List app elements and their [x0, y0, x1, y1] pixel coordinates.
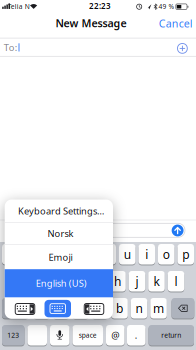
button[interactable]: m [150, 298, 167, 318]
staticText: 49 % [159, 2, 175, 11]
button[interactable]: return [148, 325, 194, 345]
button[interactable]: o [158, 244, 174, 264]
button[interactable]: 123 [2, 325, 24, 345]
button[interactable]: k [148, 271, 165, 291]
button[interactable]: Shift [2, 298, 29, 318]
button[interactable]: p [177, 244, 194, 264]
staticText: return [161, 331, 181, 340]
button[interactable]: x [53, 298, 69, 318]
button[interactable]: z [33, 298, 50, 318]
staticText: p [182, 246, 189, 262]
button[interactable]: Norsk [6, 222, 115, 244]
button[interactable]: English (US) [7, 269, 115, 297]
staticText: d [55, 273, 62, 289]
staticText: s [36, 273, 42, 289]
staticText: e [46, 246, 53, 262]
button[interactable]: Dictate [50, 325, 69, 345]
staticText: @ [111, 329, 119, 341]
button[interactable]: Keyboard Settings… [7, 200, 115, 222]
button[interactable]: Right one-handed keyboard [82, 302, 106, 316]
staticText: j [135, 273, 138, 289]
staticText: o [163, 246, 170, 262]
staticText: To: [4, 41, 18, 54]
button[interactable]: @ [106, 325, 124, 345]
staticText: Cancel [159, 16, 193, 30]
button[interactable]: Add Contact [177, 43, 187, 53]
button[interactable]: d [51, 271, 67, 291]
staticText: b [116, 300, 123, 316]
staticText: u [124, 246, 131, 262]
staticText: Telia N [8, 2, 30, 11]
button[interactable]: . [127, 325, 145, 345]
staticText: f [76, 273, 80, 289]
button[interactable]: Send [172, 225, 184, 236]
staticText: l [174, 273, 177, 289]
button[interactable]: r [60, 244, 77, 264]
button[interactable]: space [72, 325, 103, 345]
staticText: m [153, 300, 164, 316]
staticText: v [97, 300, 103, 316]
button[interactable]: Next keyboard [27, 325, 47, 345]
staticText: x [58, 300, 64, 316]
staticText: New Message [55, 16, 126, 30]
staticText: . [135, 329, 138, 341]
button[interactable]: v [92, 298, 108, 318]
button[interactable]: i [138, 244, 155, 264]
button[interactable]: t [80, 244, 96, 264]
staticText: r [66, 246, 71, 262]
button[interactable]: l [168, 271, 184, 291]
button[interactable]: b [111, 298, 128, 318]
staticText: i [145, 246, 148, 262]
button[interactable]: u [119, 244, 135, 264]
button[interactable]: n [131, 298, 147, 318]
button[interactable]: Emoji [6, 245, 114, 269]
staticText: space [79, 331, 97, 340]
button[interactable]: h [109, 271, 126, 291]
button[interactable]: Left one-handed keyboard [13, 302, 37, 316]
staticText: 123 [7, 331, 19, 340]
staticText: n [136, 300, 143, 316]
staticText: k [153, 273, 159, 289]
button[interactable]: q [2, 244, 18, 264]
button[interactable]: e [41, 244, 57, 264]
staticText: Keyboard Settings… [18, 205, 104, 217]
button[interactable]: f [70, 271, 87, 291]
button[interactable]: Standard keyboard [44, 300, 71, 317]
button[interactable]: c [72, 298, 89, 318]
staticText: Norsk [47, 227, 73, 239]
button[interactable]: j [129, 271, 145, 291]
staticText: 22:23 [89, 0, 111, 11]
staticText: c [77, 300, 83, 316]
staticText: h [114, 273, 121, 289]
button[interactable]: Cancel [159, 16, 193, 30]
staticText: English (US) [36, 277, 87, 289]
button[interactable]: w [21, 244, 38, 264]
button[interactable]: Delete [171, 298, 194, 318]
button[interactable]: y [99, 244, 116, 264]
staticText: Emoji [48, 251, 72, 263]
button[interactable]: s [31, 271, 48, 291]
